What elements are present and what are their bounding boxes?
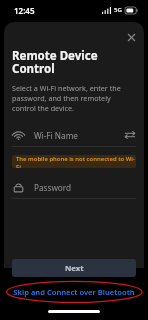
button[interactable]: Password bbox=[12, 176, 136, 198]
staticText: The mobile phone is not connected to Wi-… bbox=[16, 155, 136, 168]
staticText: Skip and Connect over Bluetooth bbox=[13, 287, 135, 297]
button[interactable]: Skip and Connect over Bluetooth bbox=[0, 280, 148, 304]
staticText: Remote Device Control bbox=[12, 48, 136, 77]
staticText: 5G bbox=[114, 6, 122, 14]
staticText: Next bbox=[65, 263, 84, 274]
staticText: 12:45 bbox=[14, 5, 35, 16]
button[interactable]: Wi-Fi Name bbox=[12, 124, 136, 146]
button[interactable]: Next bbox=[12, 259, 136, 277]
staticText: Password bbox=[34, 182, 72, 193]
staticText: Select a Wi-Fi network, enter the passwo… bbox=[12, 83, 136, 113]
other: Switch network bbox=[124, 129, 136, 141]
staticText: Wi-Fi Name bbox=[34, 130, 78, 141]
button[interactable]: Close bbox=[122, 28, 140, 46]
